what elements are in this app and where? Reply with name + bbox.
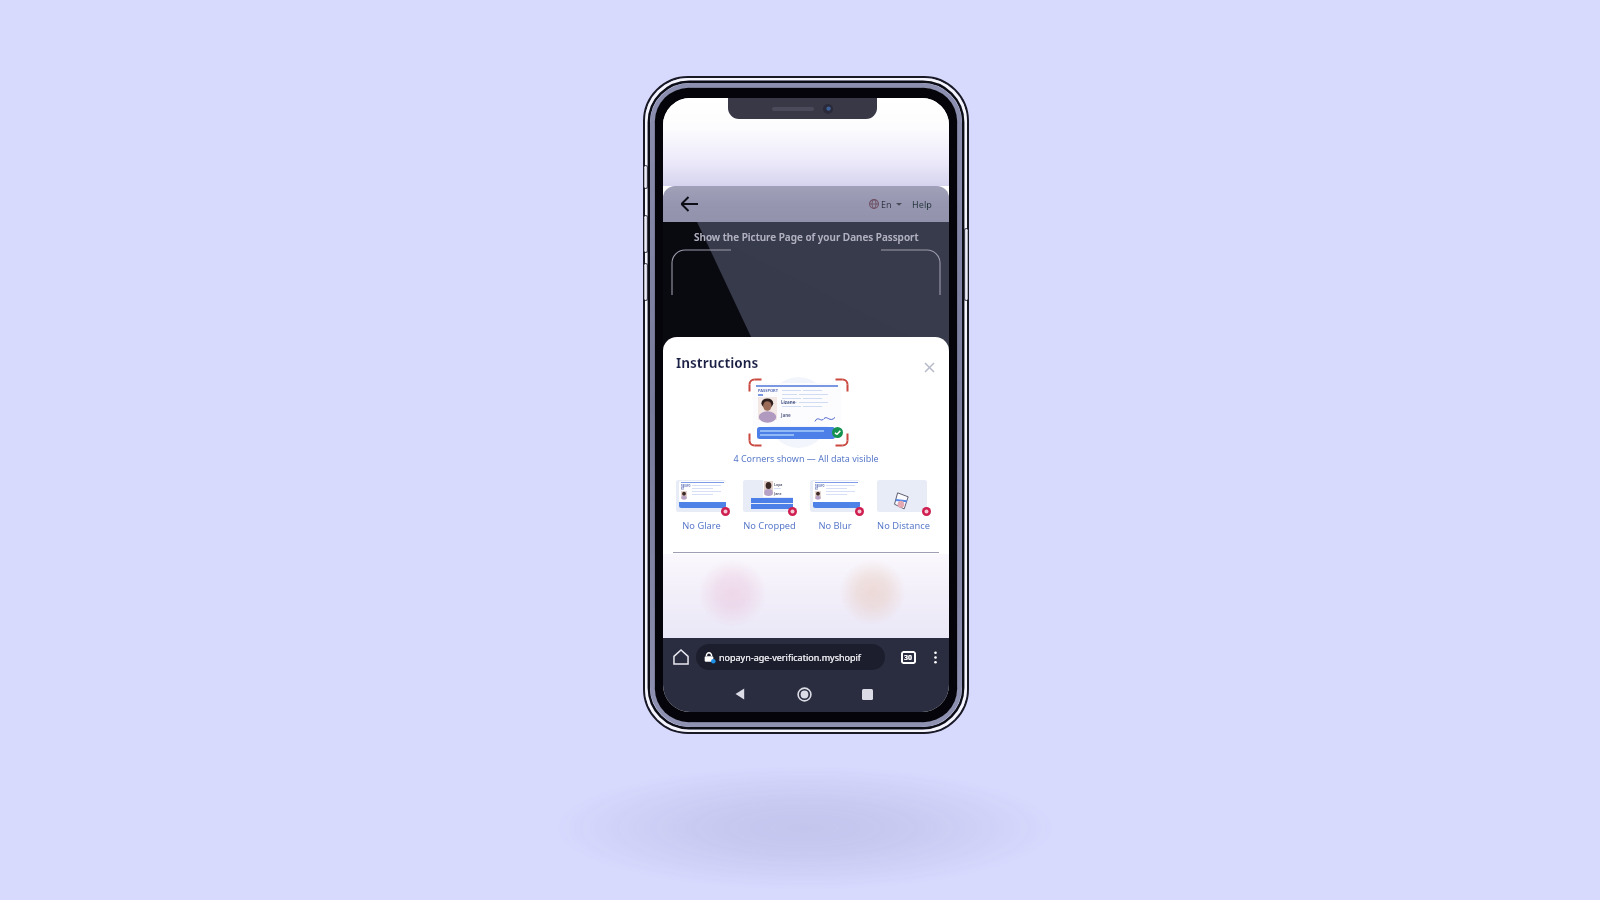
staticText: En xyxy=(881,198,892,210)
button[interactable]: En xyxy=(868,198,903,210)
staticText: Jane xyxy=(774,491,782,496)
staticText: Show the Picture Page of your Danes Pass… xyxy=(694,230,919,244)
staticText: Jane xyxy=(781,412,791,418)
staticText: 4 Corners shown — All data visible xyxy=(663,452,949,464)
button[interactable]: Home xyxy=(791,681,817,707)
staticText: No Distance xyxy=(877,519,927,530)
button[interactable]: More options xyxy=(926,648,944,666)
staticText: No Cropped xyxy=(743,519,793,530)
button[interactable]: Help xyxy=(911,198,933,210)
staticText: Instructions xyxy=(676,354,759,372)
button[interactable]: Lopa xyxy=(743,480,793,512)
button[interactable]: Tabs xyxy=(898,647,918,667)
staticText: No Glare xyxy=(682,519,721,530)
staticText: PASSPORT xyxy=(758,388,779,393)
staticText: Lizane xyxy=(781,399,796,405)
staticText: Lopa xyxy=(774,482,783,487)
button[interactable]: Back xyxy=(727,681,753,707)
button[interactable]: PASSPORT xyxy=(676,480,726,512)
button[interactable]: Recent apps xyxy=(854,681,880,707)
staticText: nopayn-age-verification.myshopif xyxy=(719,651,861,663)
button[interactable]: Back xyxy=(677,191,703,217)
staticText: PASSPORT xyxy=(815,484,825,490)
button[interactable]: Home xyxy=(669,645,693,669)
staticText: No Blur xyxy=(818,519,852,530)
staticText: 30 xyxy=(904,653,913,663)
button[interactable] xyxy=(877,480,927,512)
button[interactable]: PASSPORT xyxy=(810,480,860,512)
button[interactable]: Close xyxy=(923,361,936,374)
button[interactable]: nopayn-age-verification.myshopif xyxy=(696,644,885,670)
staticText: Help xyxy=(912,198,932,210)
staticText: PASSPORT xyxy=(681,484,691,490)
